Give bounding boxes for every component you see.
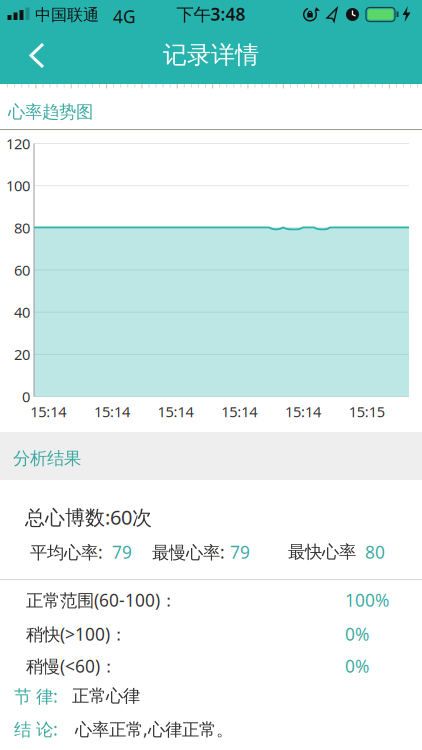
staticText: 120 <box>6 134 30 153</box>
staticText: 79 <box>230 540 250 563</box>
staticText: 中国联通 <box>35 5 99 25</box>
staticText: 分析结果 <box>13 448 81 469</box>
staticText: 心率趋势图 <box>8 101 93 123</box>
staticText: 15:14 <box>285 402 321 421</box>
staticText: 20 <box>14 345 30 364</box>
staticText: 稍慢(<60)： <box>26 654 117 677</box>
button[interactable]: Back <box>0 0 70 84</box>
staticText: 心率正常,心律正常。 <box>75 717 233 740</box>
staticText: 100 <box>6 176 30 195</box>
staticText: 60 <box>14 260 30 280</box>
staticText: 正常心律 <box>72 685 140 707</box>
staticText: 15:14 <box>94 402 130 421</box>
staticText: 0% <box>345 654 369 677</box>
staticText: 最慢心率: <box>152 540 230 563</box>
staticText: 79 <box>112 540 132 563</box>
staticText: 最快心率 <box>288 541 361 563</box>
staticText: 80 <box>14 218 30 238</box>
staticText: 15:14 <box>30 402 66 421</box>
staticText: 15:15 <box>349 402 385 421</box>
staticText: 40 <box>14 302 30 322</box>
staticText: 15:14 <box>158 402 194 421</box>
staticText: 100% <box>345 588 389 611</box>
staticText: 结 论: <box>14 717 63 740</box>
staticText: 0 <box>22 387 30 406</box>
staticText: 15:14 <box>221 402 257 421</box>
staticText: 记录详情 <box>163 40 259 70</box>
staticText: 4G <box>113 5 136 28</box>
staticText: 0% <box>345 622 369 645</box>
staticText: 80 <box>365 540 385 563</box>
staticText: 正常范围(60-100)： <box>26 588 177 611</box>
staticText: 节 律: <box>14 684 63 707</box>
staticText: 稍快(>100)： <box>26 622 127 645</box>
staticText: 平均心率: <box>30 540 108 563</box>
staticText: 总心博数:60次 <box>25 504 152 530</box>
staticText: 下午3:48 <box>176 2 245 25</box>
